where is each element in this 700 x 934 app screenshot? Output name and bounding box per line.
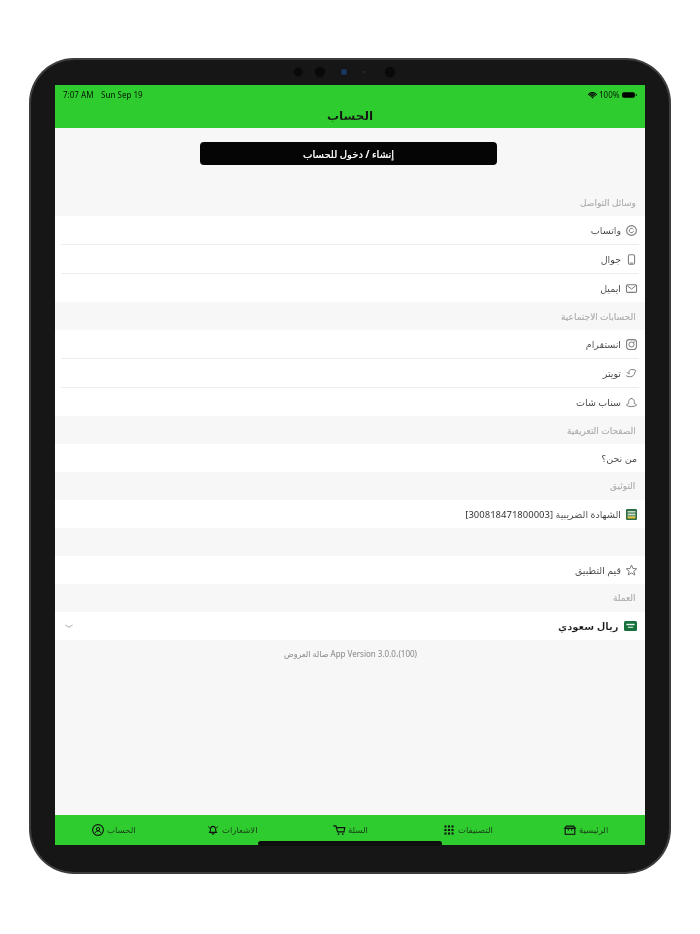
staticText: جوال bbox=[600, 254, 621, 265]
other: Tax certificate bbox=[626, 509, 637, 520]
staticText: صالة العروض App Version 3.0.0،(100) bbox=[284, 648, 417, 659]
other: WhatsApp bbox=[626, 225, 637, 236]
button[interactable]: Account bbox=[55, 815, 173, 845]
staticText: Sun Sep 19 bbox=[101, 89, 143, 100]
staticText: الرئيسية bbox=[579, 825, 609, 835]
staticText: الصفحات التعريفية bbox=[567, 424, 636, 436]
other: Notifications bbox=[207, 824, 219, 836]
staticText: واتساب bbox=[590, 225, 621, 236]
staticText: الحساب bbox=[327, 109, 374, 123]
other: Snapchat bbox=[626, 397, 637, 408]
other: Rate app bbox=[626, 565, 637, 576]
staticText: تويتر bbox=[602, 368, 621, 379]
button[interactable]: Categories bbox=[409, 815, 527, 845]
other: Account bbox=[92, 824, 104, 836]
staticText: ايميل bbox=[600, 283, 621, 294]
staticText: السلة bbox=[348, 825, 368, 835]
staticText: انستقرام bbox=[585, 339, 621, 350]
button[interactable]: Home bbox=[527, 815, 645, 845]
other: Email bbox=[626, 283, 637, 294]
staticText: العملة bbox=[613, 593, 636, 603]
other: Twitter bbox=[626, 368, 637, 379]
staticText: وسائل التواصل bbox=[580, 196, 636, 208]
button[interactable]: انستقرام bbox=[55, 330, 645, 358]
staticText: 100% bbox=[599, 89, 620, 100]
button[interactable]: قيم التطبيق bbox=[55, 556, 645, 584]
button[interactable]: Expand currency bbox=[55, 612, 645, 640]
other: Cart bbox=[333, 824, 345, 836]
staticText: الاشعارات bbox=[222, 825, 258, 835]
other: Categories bbox=[443, 824, 455, 836]
button[interactable]: من نحن؟ bbox=[55, 444, 645, 472]
staticText: الحسابات الاجتماعية bbox=[561, 310, 636, 322]
button[interactable]: Cart bbox=[291, 815, 409, 845]
button[interactable]: ايميل bbox=[55, 274, 645, 302]
button[interactable]: الشهادة الضريبية [300818471800003] bbox=[55, 500, 645, 528]
staticText: من نحن؟ bbox=[601, 452, 637, 465]
button[interactable]: إنشاء / دخول للحساب bbox=[200, 142, 497, 165]
staticText: قيم التطبيق bbox=[574, 564, 621, 577]
button[interactable]: جوال bbox=[55, 245, 645, 273]
other: Instagram bbox=[626, 339, 637, 350]
other: Home bbox=[564, 824, 576, 836]
button[interactable]: تويتر bbox=[55, 359, 645, 387]
other: Expand currency bbox=[64, 621, 74, 631]
staticText: 7:07 AM bbox=[63, 89, 94, 100]
staticText: إنشاء / دخول للحساب bbox=[303, 147, 395, 161]
staticText: ريال سعودي bbox=[558, 619, 619, 633]
staticText: سناب شات bbox=[576, 396, 621, 409]
staticText: الحساب bbox=[107, 825, 136, 835]
button[interactable]: سناب شات bbox=[55, 388, 645, 416]
staticText: التصنيفات bbox=[458, 825, 493, 835]
button[interactable]: واتساب bbox=[55, 216, 645, 244]
staticText: الشهادة الضريبية [300818471800003] bbox=[465, 508, 621, 521]
button[interactable]: Notifications bbox=[173, 815, 291, 845]
other: Phone bbox=[626, 254, 637, 265]
staticText: التوثيق bbox=[610, 481, 636, 491]
